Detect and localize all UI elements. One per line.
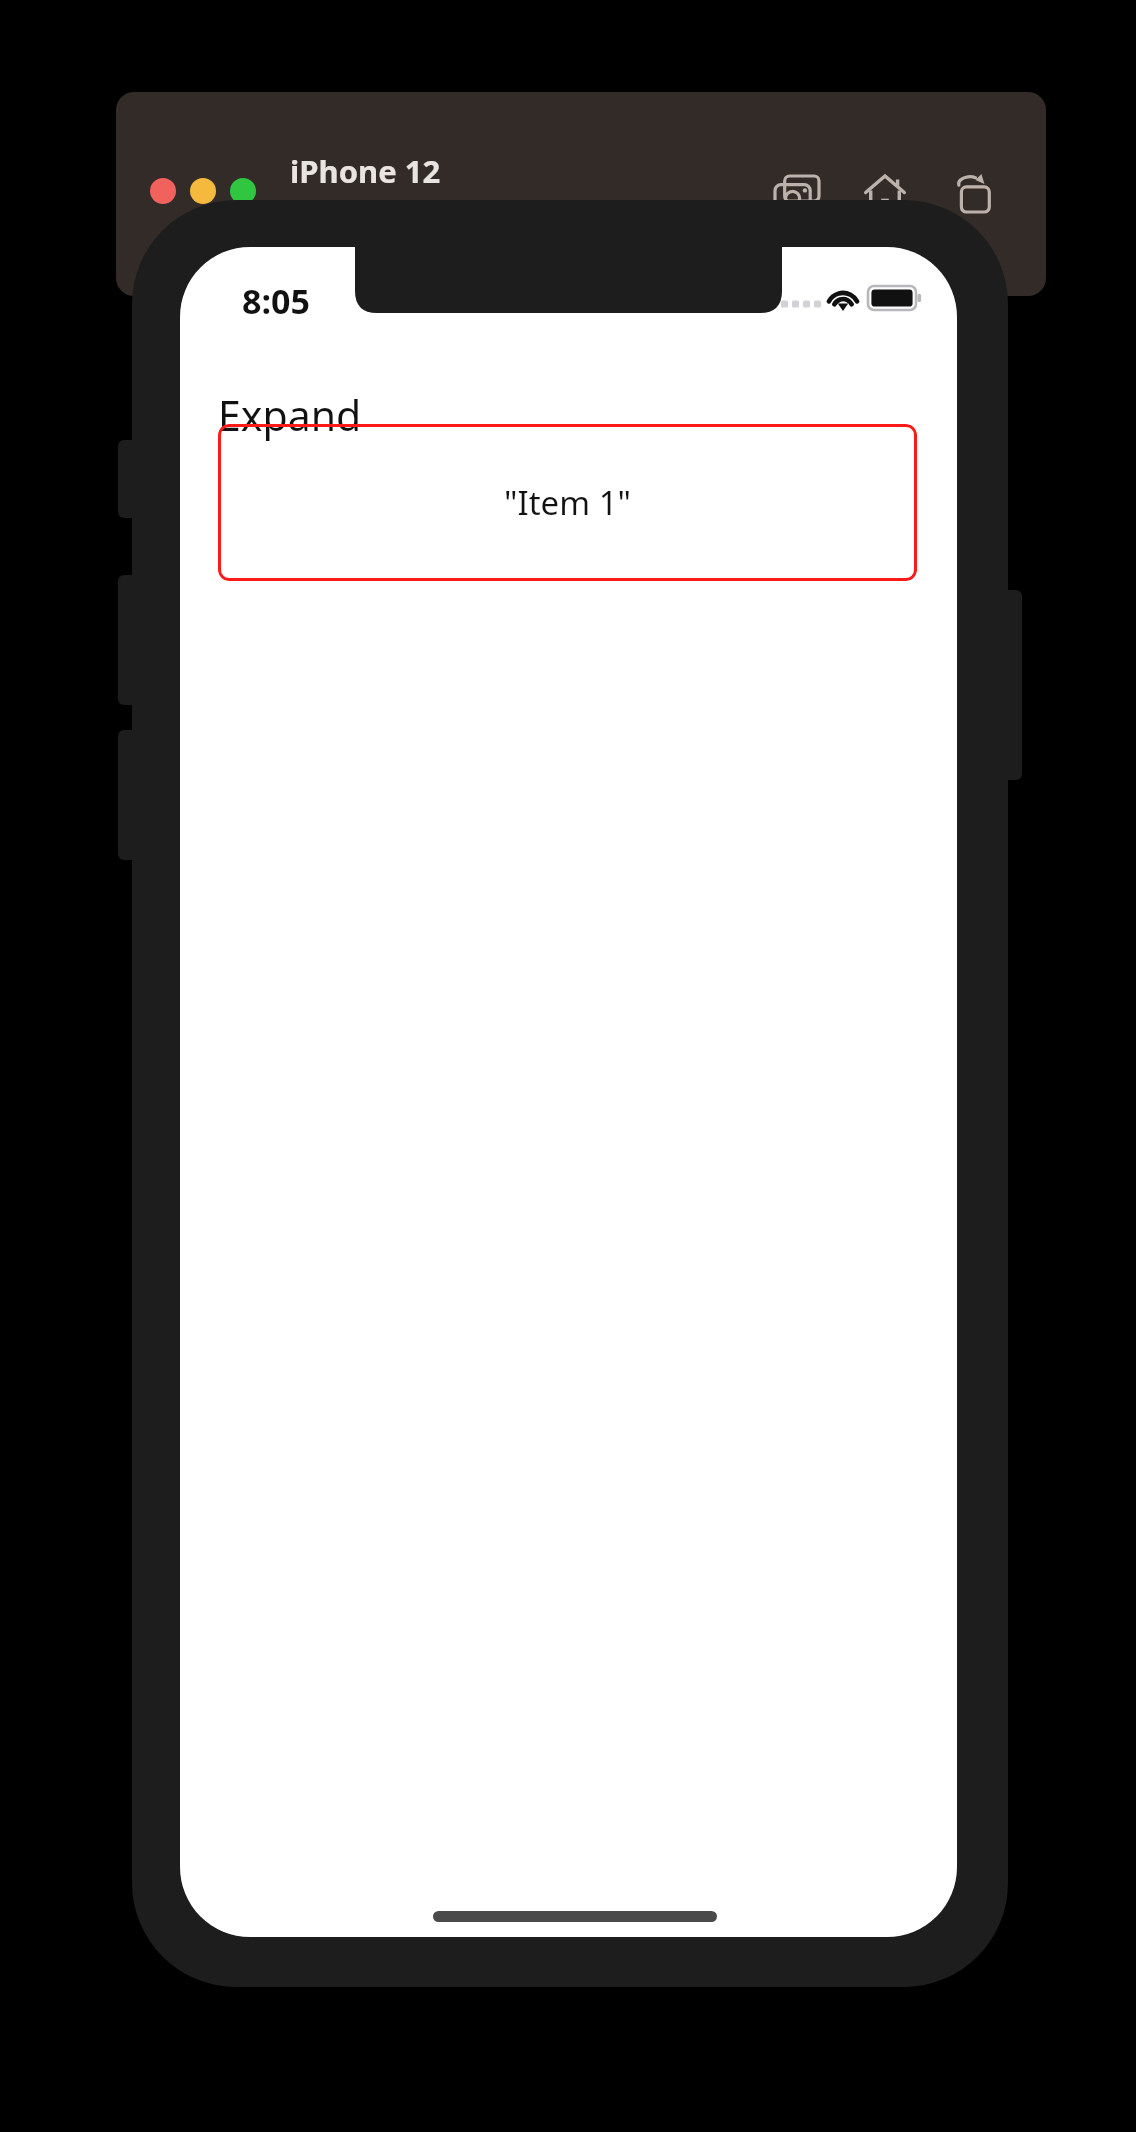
button[interactable]: Home <box>859 168 911 220</box>
button[interactable]: Maximise <box>230 178 256 204</box>
button[interactable]: "Item 1" <box>218 424 917 581</box>
button[interactable]: Expand <box>218 387 362 443</box>
button[interactable]: Minimise <box>190 178 216 204</box>
staticText: "Item 1" <box>504 480 631 525</box>
staticText: Expand <box>218 387 362 443</box>
button[interactable]: Close <box>150 178 176 204</box>
staticText: 8:05 <box>242 278 310 324</box>
staticText: iPhone 12 <box>290 150 441 192</box>
staticText: iOS 14.4 <box>290 198 386 232</box>
button[interactable]: Rotate device <box>949 168 1001 220</box>
button[interactable]: Screenshot <box>771 168 823 220</box>
